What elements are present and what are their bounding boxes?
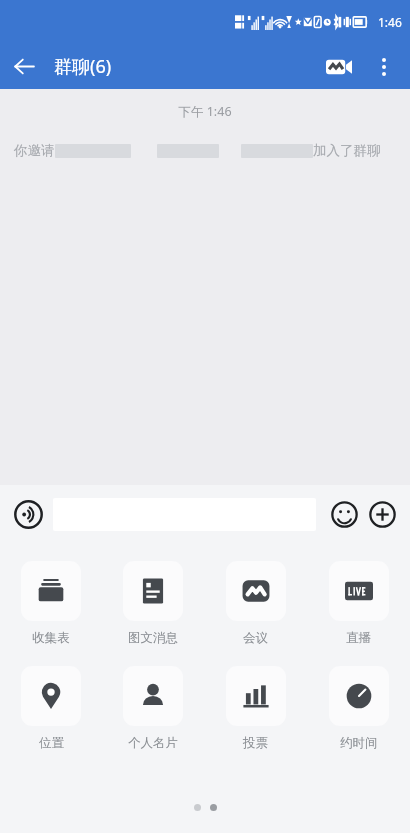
staticText: 收集表 xyxy=(32,630,70,646)
button[interactable]: 位置 xyxy=(0,666,102,751)
staticText: 群聊(6) xyxy=(54,54,112,79)
staticText: 下午 1:46 xyxy=(0,103,410,120)
button[interactable]: 会议 xyxy=(204,561,307,646)
button[interactable]: 个人名片 xyxy=(102,666,204,751)
staticText: 投票 xyxy=(243,735,268,751)
staticText: 位置 xyxy=(39,735,64,751)
button[interactable]: Emoji xyxy=(327,497,361,531)
button[interactable]: Video call xyxy=(316,44,362,89)
staticText: 约时间 xyxy=(340,735,378,751)
staticText: 直播 xyxy=(346,630,371,646)
staticText: 你邀请 xyxy=(14,142,55,159)
button[interactable]: Voice message xyxy=(11,497,45,531)
staticText: 1:46 xyxy=(378,14,402,30)
button[interactable]: 收集表 xyxy=(0,561,102,646)
staticText: 会议 xyxy=(243,630,268,646)
button[interactable]: 约时间 xyxy=(307,666,410,751)
button[interactable]: More options xyxy=(362,45,406,89)
button[interactable]: 图文消息 xyxy=(102,561,204,646)
staticText: 图文消息 xyxy=(128,630,178,646)
button[interactable]: 投票 xyxy=(204,666,307,751)
staticText: 加入了群聊 xyxy=(313,142,381,159)
staticText: 个人名片 xyxy=(128,735,178,751)
button[interactable]: 直播 xyxy=(307,561,410,646)
button[interactable]: Back xyxy=(0,44,48,89)
button[interactable]: More attachments xyxy=(365,497,399,531)
